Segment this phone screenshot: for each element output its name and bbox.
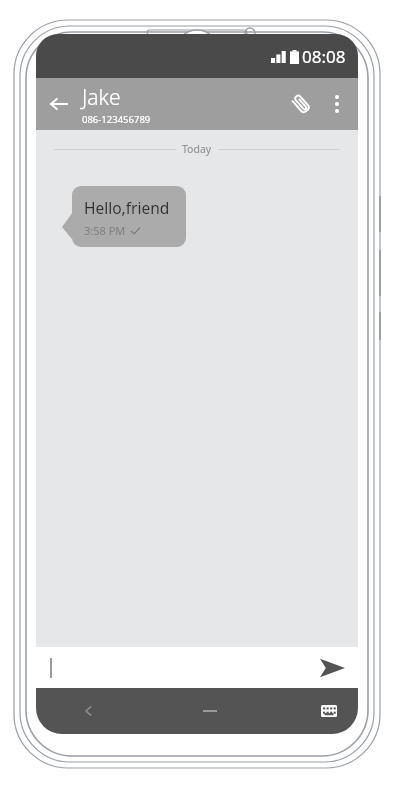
button[interactable]: More options [322, 78, 352, 130]
staticText: Today [182, 142, 212, 156]
button[interactable]: Send [306, 647, 358, 688]
staticText: 086-123456789 [82, 113, 151, 126]
staticText: 3:58 PM [84, 223, 126, 238]
button[interactable]: Hello,friend [72, 186, 186, 247]
staticText: Hello,friend [84, 197, 170, 218]
button[interactable]: Back [36, 78, 82, 130]
button[interactable]: Jake [82, 83, 280, 126]
staticText: 08:08 [302, 45, 346, 68]
button[interactable]: Back [64, 688, 114, 734]
button[interactable]: Keyboard [306, 688, 352, 734]
button[interactable]: Attach [280, 78, 322, 130]
button[interactable]: Home [185, 688, 235, 734]
staticText: Jake [82, 83, 121, 112]
button[interactable] [36, 647, 306, 688]
